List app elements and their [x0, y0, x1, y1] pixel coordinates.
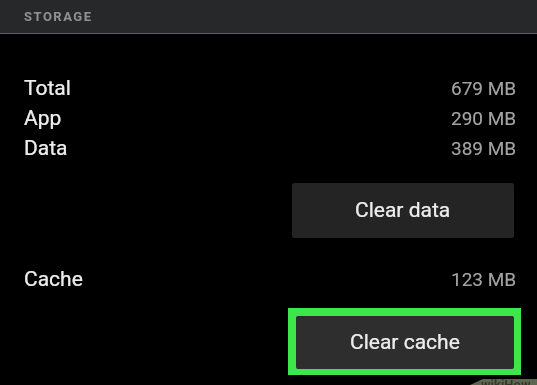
staticText: 679 MB [451, 77, 517, 99]
button[interactable]: Data [0, 135, 537, 161]
staticText: Clear cache [350, 330, 460, 355]
button[interactable]: STORAGE [0, 0, 537, 33]
button[interactable]: Clear cache [296, 316, 514, 369]
staticText: Total [24, 76, 71, 101]
staticText: STORAGE [24, 9, 93, 24]
staticText: Cache [24, 267, 83, 292]
staticText: Clear data [355, 198, 451, 223]
staticText: 290 MB [451, 107, 517, 129]
button[interactable]: Clear data [292, 183, 514, 238]
staticText: wikiHow [481, 377, 531, 385]
button[interactable]: App [0, 105, 537, 131]
button[interactable]: Cache [0, 266, 537, 292]
staticText: 389 MB [451, 137, 517, 159]
staticText: App [24, 106, 62, 131]
staticText: 123 MB [451, 268, 517, 290]
button[interactable]: Total [0, 75, 537, 101]
staticText: Data [24, 136, 68, 161]
